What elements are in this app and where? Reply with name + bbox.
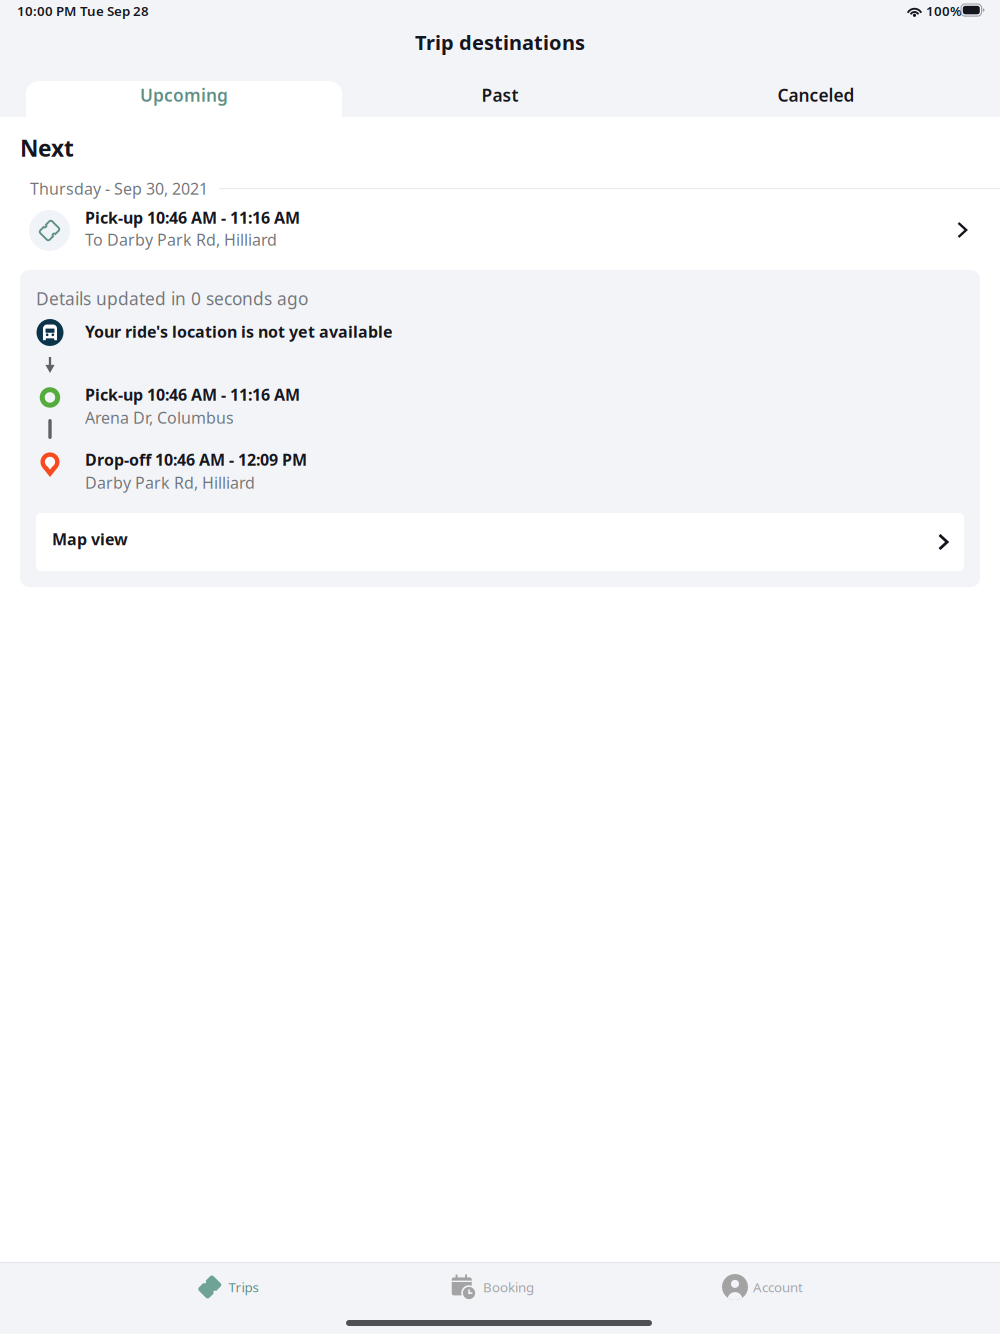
staticText: Thursday - Sep 30, 2021 <box>30 178 208 199</box>
staticText: Canceled <box>777 83 854 106</box>
staticText: Darby Park Rd, Hilliard <box>85 472 255 493</box>
button[interactable]: Map view <box>36 513 964 571</box>
staticText: 100% <box>926 2 962 20</box>
staticText: Next <box>20 133 74 163</box>
staticText: Tue Sep 28 <box>80 2 149 20</box>
staticText: Booking <box>483 1278 534 1296</box>
staticText: Details updated in 0 seconds ago <box>36 287 308 310</box>
staticText: Past <box>481 83 518 106</box>
staticText: To Darby Park Rd, Hilliard <box>85 229 277 250</box>
button[interactable]: Canceled <box>658 77 974 113</box>
staticText: Your ride's location is not yet availabl… <box>85 321 393 342</box>
staticText: Map view <box>52 528 128 550</box>
staticText: Pick-up 10:46 AM - 11:16 AM <box>85 384 300 405</box>
button[interactable]: Pick-up 10:46 AM - 11:16 AM <box>0 204 1000 256</box>
staticText: Pick-up 10:46 AM - 11:16 AM <box>85 207 300 228</box>
button[interactable]: Trips <box>197 1267 258 1307</box>
staticText: 10:00 PM <box>17 2 76 20</box>
button[interactable]: Upcoming <box>26 77 342 113</box>
button[interactable]: Account <box>722 1267 803 1307</box>
staticText: Account <box>753 1278 803 1296</box>
staticText: Arena Dr, Columbus <box>85 407 234 428</box>
button[interactable]: Booking <box>451 1267 534 1307</box>
staticText: Drop-off 10:46 AM - 12:09 PM <box>85 449 307 470</box>
button[interactable]: Past <box>342 77 658 113</box>
staticText: Trip destinations <box>415 29 585 56</box>
staticText: Upcoming <box>140 83 228 106</box>
staticText: Trips <box>228 1278 258 1296</box>
